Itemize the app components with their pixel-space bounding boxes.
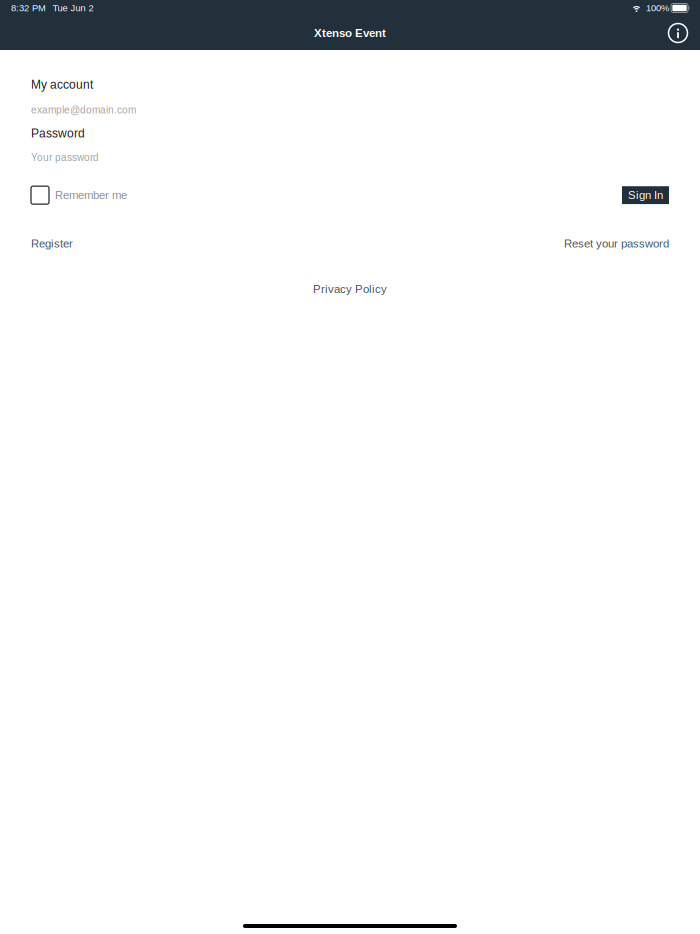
staticText: Tue Jun 2 xyxy=(52,3,93,13)
staticText: Password xyxy=(31,127,85,140)
button[interactable]: Register xyxy=(31,237,73,250)
staticText: Reset your password xyxy=(564,237,669,250)
staticText: Remember me xyxy=(55,189,127,201)
button[interactable]: Reset your password xyxy=(564,237,669,250)
button[interactable]: Sign In xyxy=(622,186,669,204)
staticText: My account xyxy=(31,78,93,91)
staticText: 100% xyxy=(646,3,669,13)
staticText: example@domain.com xyxy=(31,104,136,116)
staticText: Xtenso Event xyxy=(314,27,386,39)
staticText: Privacy Policy xyxy=(313,283,387,295)
staticText: 8:32 PM xyxy=(11,3,46,13)
button[interactable]: Remember me xyxy=(31,186,127,204)
button[interactable]: Privacy Policy xyxy=(313,283,387,295)
staticText: Sign In xyxy=(628,189,663,201)
button[interactable]: Information xyxy=(668,23,688,43)
staticText: Register xyxy=(31,237,73,250)
staticText: Your password xyxy=(31,152,99,163)
